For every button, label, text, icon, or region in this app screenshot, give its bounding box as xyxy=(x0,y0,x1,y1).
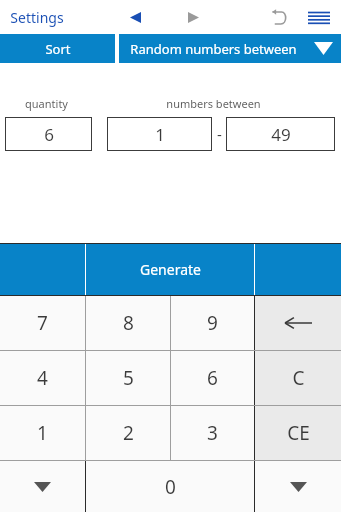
staticText: Generate xyxy=(140,260,201,279)
staticText: quantity xyxy=(25,96,68,111)
button[interactable]: 1 xyxy=(107,117,212,151)
staticText: 7 xyxy=(37,310,48,336)
staticText: 2 xyxy=(123,420,134,446)
staticText: 3 xyxy=(207,420,218,446)
button[interactable]: 7 xyxy=(0,296,85,350)
button[interactable]: 0 xyxy=(86,461,254,512)
button[interactable]: 4 xyxy=(0,351,85,405)
button[interactable]: Previous xyxy=(0,461,85,512)
button[interactable]: Forward xyxy=(180,4,206,30)
button[interactable]: Back xyxy=(122,4,148,30)
staticText: - xyxy=(217,124,222,144)
button[interactable]: Random numbers between xyxy=(119,34,341,63)
staticText: 8 xyxy=(123,310,134,336)
button[interactable]: 9 xyxy=(171,296,254,350)
staticText: 49 xyxy=(271,123,291,146)
button[interactable]: Generate xyxy=(86,244,254,295)
button[interactable]: Settings xyxy=(8,4,66,31)
staticText: 5 xyxy=(123,365,134,391)
staticText: CE xyxy=(287,420,310,446)
button[interactable]: 49 xyxy=(226,117,335,151)
staticText: Sort xyxy=(45,40,71,58)
button[interactable]: 5 xyxy=(86,351,170,405)
staticText: 1 xyxy=(155,123,165,146)
button[interactable]: CE xyxy=(255,406,341,460)
staticText: C xyxy=(292,365,305,391)
button[interactable]: Menu xyxy=(303,1,335,33)
button[interactable]: Next xyxy=(255,461,341,512)
button[interactable]: 1 xyxy=(0,406,85,460)
staticText: numbers between xyxy=(166,96,261,111)
staticText: 6 xyxy=(44,123,54,146)
button[interactable]: Sort xyxy=(0,34,115,63)
button[interactable]: 2 xyxy=(86,406,170,460)
button[interactable]: 8 xyxy=(86,296,170,350)
staticText: Settings xyxy=(10,8,64,27)
button[interactable]: Backspace xyxy=(255,296,341,350)
staticText: 1 xyxy=(37,420,48,446)
button[interactable]: 6 xyxy=(5,117,92,151)
staticText: Random numbers between xyxy=(130,40,297,58)
button[interactable]: 6 xyxy=(171,351,254,405)
staticText: 0 xyxy=(165,474,176,500)
button[interactable]: 3 xyxy=(171,406,254,460)
button[interactable]: C xyxy=(255,351,341,405)
staticText: 9 xyxy=(207,310,218,336)
staticText: 6 xyxy=(207,365,218,391)
staticText: 4 xyxy=(37,365,48,391)
button[interactable]: Undo xyxy=(265,3,293,31)
